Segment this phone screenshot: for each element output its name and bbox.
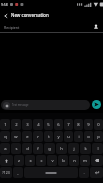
staticText: v bbox=[51, 158, 54, 164]
staticText: t bbox=[48, 134, 50, 140]
button[interactable]: , bbox=[13, 167, 23, 178]
button[interactable]: d bbox=[22, 143, 32, 154]
staticText: 6 bbox=[57, 122, 60, 128]
button[interactable]: 3 bbox=[22, 119, 32, 130]
staticText: w bbox=[14, 134, 18, 140]
staticText: 9 bbox=[87, 122, 90, 128]
button[interactable]: ?123 bbox=[0, 167, 12, 178]
staticText: 5 bbox=[47, 122, 50, 128]
button[interactable]: n bbox=[69, 155, 79, 166]
staticText: e bbox=[26, 134, 29, 140]
staticText: . bbox=[83, 170, 85, 176]
staticText: u bbox=[67, 134, 70, 140]
staticText: o bbox=[87, 134, 90, 140]
button[interactable]: 4 bbox=[33, 119, 43, 130]
staticText: f bbox=[37, 146, 39, 152]
button[interactable]: y bbox=[54, 131, 63, 142]
button[interactable]: . bbox=[79, 167, 89, 178]
button[interactable]: 1 bbox=[0, 119, 10, 130]
staticText: p bbox=[97, 134, 100, 140]
staticText: 8 bbox=[77, 122, 80, 128]
button[interactable]: Send bbox=[92, 100, 101, 109]
button[interactable]: c bbox=[36, 155, 46, 166]
staticText: m bbox=[83, 158, 87, 164]
staticText: b bbox=[62, 158, 65, 164]
staticText: , bbox=[17, 170, 19, 176]
button[interactable]: s bbox=[11, 143, 21, 154]
button[interactable]: 2 bbox=[11, 119, 21, 130]
button[interactable]: h bbox=[56, 143, 67, 154]
button[interactable]: 8 bbox=[74, 119, 83, 130]
staticText: Recipient bbox=[4, 25, 20, 30]
staticText: k bbox=[84, 146, 87, 152]
button[interactable]: i bbox=[74, 131, 83, 142]
button[interactable]: Add contact bbox=[91, 22, 101, 32]
button[interactable]: 7 bbox=[64, 119, 73, 130]
button[interactable]: g bbox=[44, 143, 55, 154]
staticText: l bbox=[97, 146, 99, 152]
staticText: 4 bbox=[37, 122, 40, 128]
staticText: 2 bbox=[15, 122, 18, 128]
staticText: q bbox=[4, 134, 7, 140]
button[interactable]: j bbox=[68, 143, 79, 154]
button[interactable]: q bbox=[0, 131, 10, 142]
button[interactable]: z bbox=[14, 155, 24, 166]
button[interactable]: m bbox=[80, 155, 90, 166]
button[interactable]: a bbox=[0, 143, 10, 154]
staticText: 3 bbox=[26, 122, 29, 128]
staticText: New conversation bbox=[11, 12, 49, 18]
staticText: 9:58 bbox=[1, 2, 8, 7]
staticText: 1 bbox=[4, 122, 7, 128]
button[interactable]: Space bbox=[24, 167, 78, 178]
staticText: 0 bbox=[97, 122, 100, 128]
button[interactable]: Enter bbox=[90, 167, 103, 178]
staticText: y bbox=[57, 134, 60, 140]
button[interactable]: k bbox=[80, 143, 91, 154]
button[interactable]: Back bbox=[0, 10, 11, 21]
staticText: j bbox=[73, 146, 75, 152]
staticText: ?123 bbox=[2, 170, 10, 175]
button[interactable]: 6 bbox=[54, 119, 63, 130]
button[interactable]: 5 bbox=[44, 119, 53, 130]
staticText: h bbox=[60, 146, 63, 152]
button[interactable]: 9 bbox=[84, 119, 93, 130]
staticText: n bbox=[73, 158, 76, 164]
button[interactable]: e bbox=[22, 131, 32, 142]
button[interactable]: 0 bbox=[94, 119, 103, 130]
staticText: Text message bbox=[12, 103, 29, 107]
staticText: 7 bbox=[67, 122, 70, 128]
button[interactable]: u bbox=[64, 131, 73, 142]
staticText: c bbox=[40, 158, 43, 164]
button[interactable]: w bbox=[11, 131, 21, 142]
button[interactable]: v bbox=[47, 155, 57, 166]
button[interactable]: o bbox=[84, 131, 93, 142]
button[interactable]: l bbox=[92, 143, 103, 154]
button[interactable]: t bbox=[44, 131, 53, 142]
staticText: s bbox=[15, 146, 18, 152]
button[interactable]: r bbox=[33, 131, 43, 142]
button[interactable]: p bbox=[94, 131, 103, 142]
staticText: r bbox=[37, 134, 39, 140]
button[interactable]: Shift bbox=[0, 155, 13, 166]
button[interactable]: x bbox=[25, 155, 35, 166]
staticText: x bbox=[29, 158, 32, 164]
button[interactable]: Add attachment bbox=[1, 100, 90, 110]
button[interactable]: b bbox=[58, 155, 68, 166]
button[interactable]: Add attachment bbox=[3, 102, 10, 109]
staticText: a bbox=[4, 146, 7, 152]
staticText: z bbox=[18, 158, 20, 164]
staticText: i bbox=[78, 134, 80, 140]
button[interactable]: Delete bbox=[91, 155, 103, 166]
staticText: d bbox=[26, 146, 29, 152]
button[interactable]: f bbox=[33, 143, 43, 154]
staticText: g bbox=[48, 146, 51, 152]
